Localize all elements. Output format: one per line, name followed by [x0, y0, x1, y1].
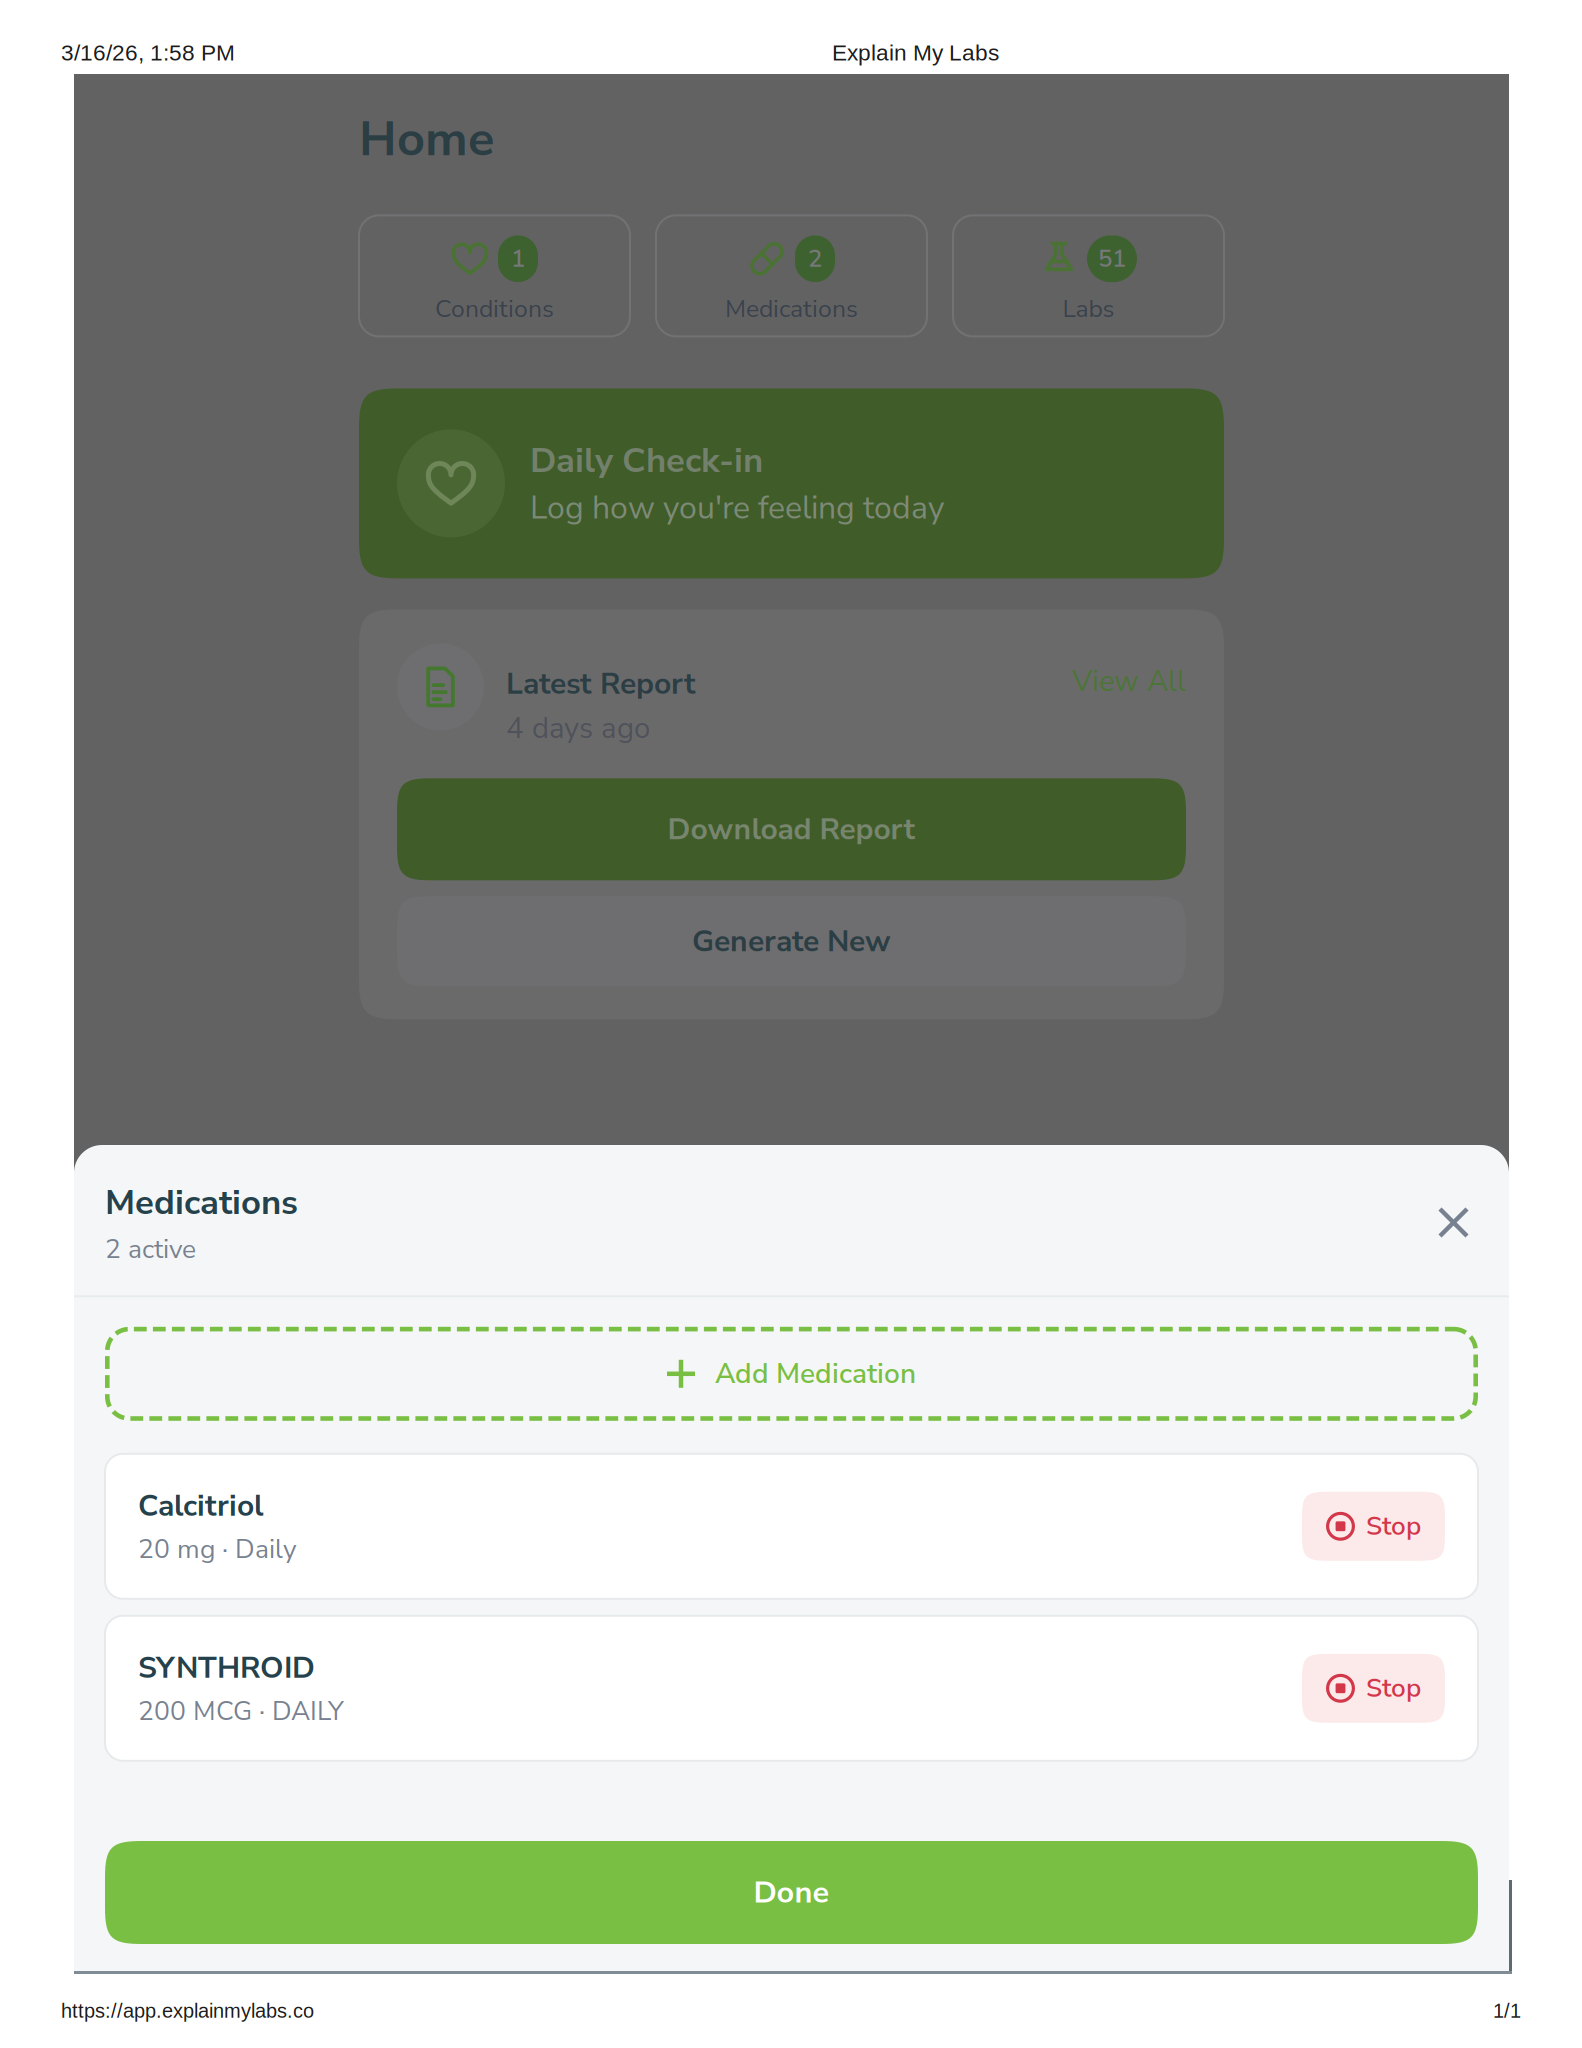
- button[interactable]: Stop: [1302, 1654, 1445, 1723]
- button[interactable]: Done: [105, 1841, 1478, 1944]
- staticText: Explain My Labs: [832, 40, 999, 65]
- button[interactable]: Download Report: [397, 778, 1186, 880]
- staticText: 2 active: [105, 1231, 196, 1267]
- button[interactable]: 51: [953, 215, 1224, 336]
- button[interactable]: View All: [1072, 643, 1186, 701]
- button[interactable]: Generate New: [397, 896, 1186, 986]
- staticText: Daily Check-in: [530, 437, 763, 484]
- staticText: Add Medication: [715, 1355, 916, 1393]
- button[interactable]: Stop: [1302, 1492, 1445, 1561]
- staticText: Labs: [1062, 292, 1114, 326]
- staticText: 4 days ago: [506, 708, 650, 748]
- staticText: https://app.explainmylabs.co: [61, 2000, 314, 2022]
- staticText: Calcitriol: [138, 1485, 264, 1526]
- staticText: SYNTHROID: [138, 1647, 315, 1688]
- staticText: Latest Report: [506, 663, 696, 704]
- staticText: Stop: [1366, 1509, 1421, 1544]
- button[interactable]: Daily Check-in: [359, 388, 1224, 578]
- staticText: Done: [753, 1872, 829, 1913]
- staticText: 1/1: [1493, 2000, 1521, 2022]
- staticText: View All: [1072, 661, 1186, 701]
- staticText: 51: [1098, 242, 1126, 275]
- button[interactable]: 1: [359, 215, 630, 336]
- staticText: Medications: [725, 292, 858, 326]
- staticText: 2: [808, 242, 822, 275]
- staticText: 20 mg · Daily: [138, 1531, 297, 1567]
- staticText: Download Report: [667, 809, 915, 850]
- staticText: 3/16/26, 1:58 PM: [61, 40, 235, 65]
- staticText: 200 MCG · DAILY: [138, 1693, 344, 1729]
- button[interactable]: Add Medication: [105, 1327, 1478, 1421]
- staticText: Conditions: [435, 292, 554, 326]
- staticText: Medications: [105, 1179, 298, 1226]
- button[interactable]: Close: [1429, 1198, 1478, 1247]
- button[interactable]: 2: [656, 215, 927, 336]
- staticText: Stop: [1366, 1671, 1421, 1706]
- staticText: 1: [511, 242, 525, 275]
- staticText: Log how you're feeling today: [530, 486, 944, 530]
- staticText: Home: [359, 106, 494, 172]
- staticText: Generate New: [692, 921, 891, 962]
